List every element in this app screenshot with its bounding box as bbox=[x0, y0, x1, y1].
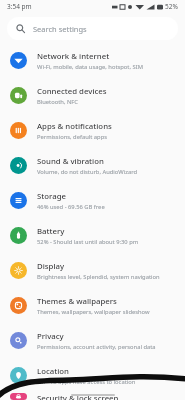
button[interactable]: Storage bbox=[0, 183, 185, 218]
other: Location bbox=[10, 367, 27, 384]
other: Battery bbox=[10, 227, 27, 244]
staticText: Sound & vibration bbox=[37, 156, 104, 167]
button[interactable]: Security & lock screen bbox=[0, 393, 185, 400]
staticText: Permissions, account activity, personal … bbox=[37, 343, 156, 351]
staticText: 52% bbox=[165, 2, 178, 11]
staticText: On - 18 apps have access to location bbox=[37, 378, 136, 386]
other: Privacy bbox=[10, 332, 27, 349]
button[interactable]: Privacy bbox=[0, 323, 185, 358]
button[interactable]: Search settings bbox=[7, 17, 178, 40]
staticText: Bluetooth, NFC bbox=[37, 98, 79, 106]
staticText: Connected devices bbox=[37, 86, 107, 97]
other: Network & internet bbox=[10, 52, 27, 69]
staticText: 3:54 pm bbox=[7, 2, 32, 11]
other: Sound & vibration bbox=[10, 157, 27, 174]
button[interactable]: Themes & wallpapers bbox=[0, 288, 185, 323]
staticText: 52% - Should last until about 9:30 pm bbox=[37, 238, 139, 246]
button[interactable]: Location bbox=[0, 358, 185, 393]
staticText: Battery bbox=[37, 226, 65, 237]
button[interactable]: Connected devices bbox=[0, 78, 185, 113]
staticText: Themes, wallpapers, wallpaper slideshow bbox=[37, 308, 150, 316]
button[interactable]: Display bbox=[0, 253, 185, 288]
button[interactable]: Sound & vibration bbox=[0, 148, 185, 183]
other: Connected devices bbox=[10, 87, 27, 104]
button[interactable]: Apps & notifications bbox=[0, 113, 185, 148]
staticText: Themes & wallpapers bbox=[37, 296, 117, 307]
staticText: Volume, do not disturb, AudioWizard bbox=[37, 168, 138, 176]
staticText: Display bbox=[37, 261, 65, 272]
other: Security & lock screen bbox=[10, 393, 27, 400]
staticText: Brightness level, Splendid, system navig… bbox=[37, 273, 160, 281]
staticText: Network & internet bbox=[37, 51, 110, 62]
other: Themes & wallpapers bbox=[10, 297, 27, 314]
staticText: Apps & notifications bbox=[37, 121, 112, 132]
staticText: Security & lock screen bbox=[37, 393, 119, 400]
button[interactable]: Network & internet bbox=[0, 43, 185, 78]
staticText: Permissions, default apps bbox=[37, 133, 107, 141]
staticText: Location bbox=[37, 366, 69, 377]
other: Display bbox=[10, 262, 27, 279]
staticText: Storage bbox=[37, 191, 66, 202]
staticText: Wi-Fi, mobile, data usage, hotspot, SIM bbox=[37, 63, 143, 71]
staticText: 46% used - 69.56 GB free bbox=[37, 203, 105, 211]
staticText: Privacy bbox=[37, 331, 64, 342]
other: Apps & notifications bbox=[10, 122, 27, 139]
button[interactable]: Battery bbox=[0, 218, 185, 253]
other: Storage bbox=[10, 192, 27, 209]
staticText: Search settings bbox=[33, 24, 87, 34]
